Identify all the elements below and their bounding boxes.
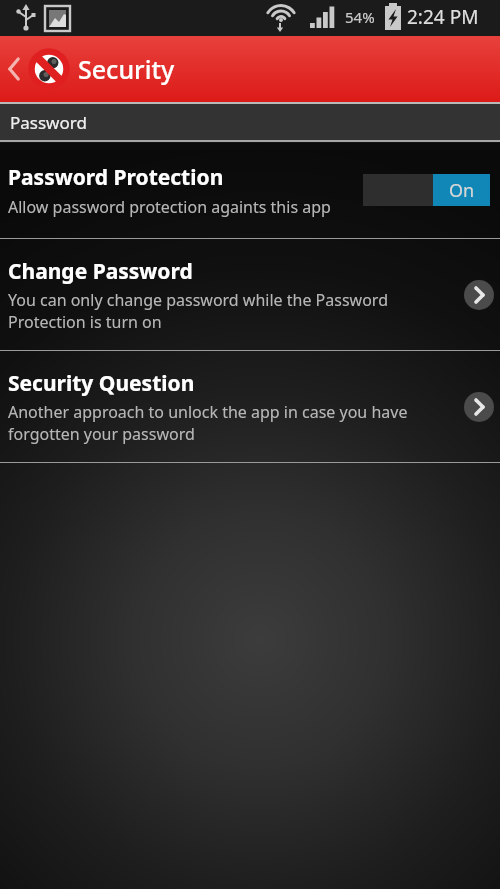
staticText: You can only change password while the P…	[8, 289, 388, 311]
staticText: Another approach to unlock the app in ca…	[8, 401, 408, 423]
button[interactable]: Password protection toggle, On	[363, 174, 490, 206]
staticText: Security	[78, 52, 175, 86]
button[interactable]: Open Change Password	[464, 280, 494, 310]
staticText: Change Password	[8, 257, 193, 286]
button[interactable]: Password Protection	[0, 142, 500, 238]
staticText: 54%	[345, 7, 375, 27]
staticText: Protection is turn on	[8, 311, 162, 333]
staticText: forgotten your password	[8, 423, 195, 445]
staticText: On	[449, 178, 475, 203]
button[interactable]: Back	[0, 36, 28, 102]
staticText: Security Question	[8, 369, 195, 398]
staticText: 2:24 PM	[407, 4, 479, 30]
staticText: Password Protection	[8, 163, 224, 192]
staticText: Password	[10, 111, 87, 134]
button[interactable]: Open Security Question	[464, 392, 494, 422]
staticText: Allow password protection againts this a…	[8, 196, 331, 218]
button[interactable]: Change Password	[0, 239, 500, 350]
button[interactable]: Security Question	[0, 351, 500, 462]
